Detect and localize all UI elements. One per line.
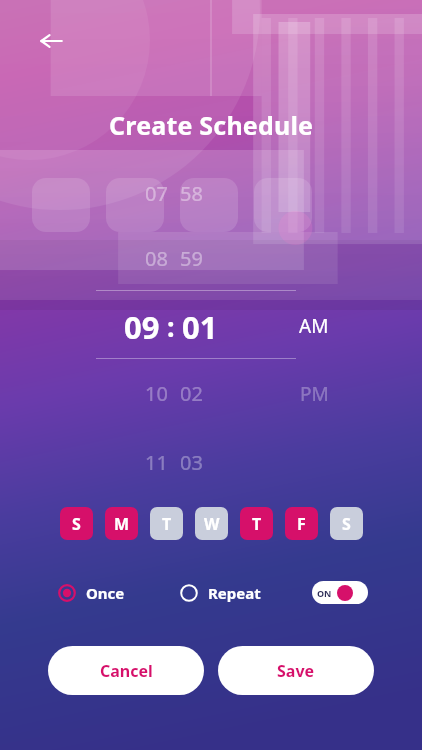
staticText: 02 (180, 380, 203, 407)
staticText: M (114, 513, 130, 535)
button[interactable]: Back (30, 20, 72, 62)
button[interactable]: T (150, 507, 183, 540)
button[interactable]: Repeat (180, 578, 261, 608)
button[interactable]: Schedule enabled toggle (317, 581, 363, 604)
button[interactable]: S (330, 507, 363, 540)
staticText: Create Schedule (109, 108, 314, 142)
button[interactable]: PM (288, 379, 340, 409)
button[interactable]: 08 (0, 244, 296, 272)
staticText: T (162, 513, 172, 535)
staticText: T (252, 513, 262, 535)
button[interactable]: Once (58, 578, 125, 608)
button[interactable]: Save (218, 646, 374, 695)
staticText: 10 (145, 380, 168, 407)
staticText: 11 (145, 449, 168, 476)
staticText: Repeat (208, 583, 261, 603)
staticText: PM (300, 381, 329, 407)
staticText: 07 (145, 180, 168, 207)
button[interactable]: 10 (0, 379, 296, 407)
staticText: : (167, 308, 175, 345)
staticText: Once (86, 583, 125, 603)
button[interactable]: S (60, 507, 93, 540)
staticText: 01 (182, 306, 218, 346)
staticText: W (204, 513, 220, 535)
button[interactable]: AM (288, 311, 340, 341)
button[interactable]: T (240, 507, 273, 540)
staticText: 59 (180, 245, 203, 272)
staticText: ON (317, 587, 332, 599)
button[interactable]: 09 (0, 306, 296, 346)
staticText: Cancel (100, 660, 153, 682)
staticText: F (297, 513, 306, 535)
staticText: 09 (124, 306, 160, 346)
staticText: S (72, 513, 81, 535)
button[interactable]: 07 (0, 179, 296, 207)
button[interactable]: F (285, 507, 318, 540)
button[interactable]: M (105, 507, 138, 540)
staticText: 58 (180, 180, 203, 207)
staticText: AM (299, 313, 329, 339)
staticText: Save (277, 660, 315, 682)
staticText: S (342, 513, 351, 535)
button[interactable]: 11 (0, 448, 296, 476)
staticText: 08 (145, 245, 168, 272)
staticText: 03 (180, 449, 203, 476)
button[interactable]: W (195, 507, 228, 540)
button[interactable]: Cancel (48, 646, 204, 695)
